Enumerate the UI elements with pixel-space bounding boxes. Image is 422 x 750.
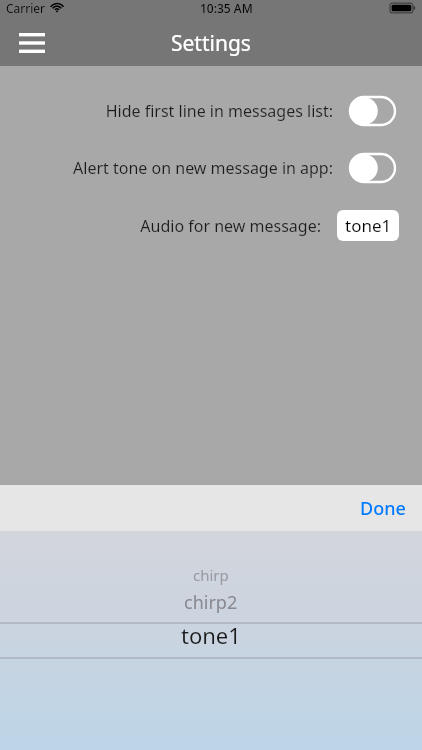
button[interactable]: Done — [360, 496, 406, 521]
button[interactable]: Toggle — [349, 153, 396, 183]
staticText: Audio for new message: — [0, 215, 321, 237]
staticText: Done — [360, 496, 406, 521]
staticText: Alert tone on new message in app: — [0, 157, 333, 179]
button[interactable]: Toggle — [349, 96, 396, 126]
staticText: 10:35 AM — [200, 0, 253, 16]
staticText: chirp — [193, 565, 229, 585]
staticText: tone1 — [345, 214, 392, 237]
staticText: Settings — [171, 29, 251, 58]
button[interactable]: Menu — [10, 21, 54, 65]
staticText: Hide first line in messages list: — [0, 100, 333, 122]
staticText: Carrier — [6, 0, 46, 16]
staticText: chirp2 — [184, 590, 238, 615]
staticText: tone1 — [181, 620, 241, 650]
button[interactable]: tone1 — [337, 210, 399, 241]
